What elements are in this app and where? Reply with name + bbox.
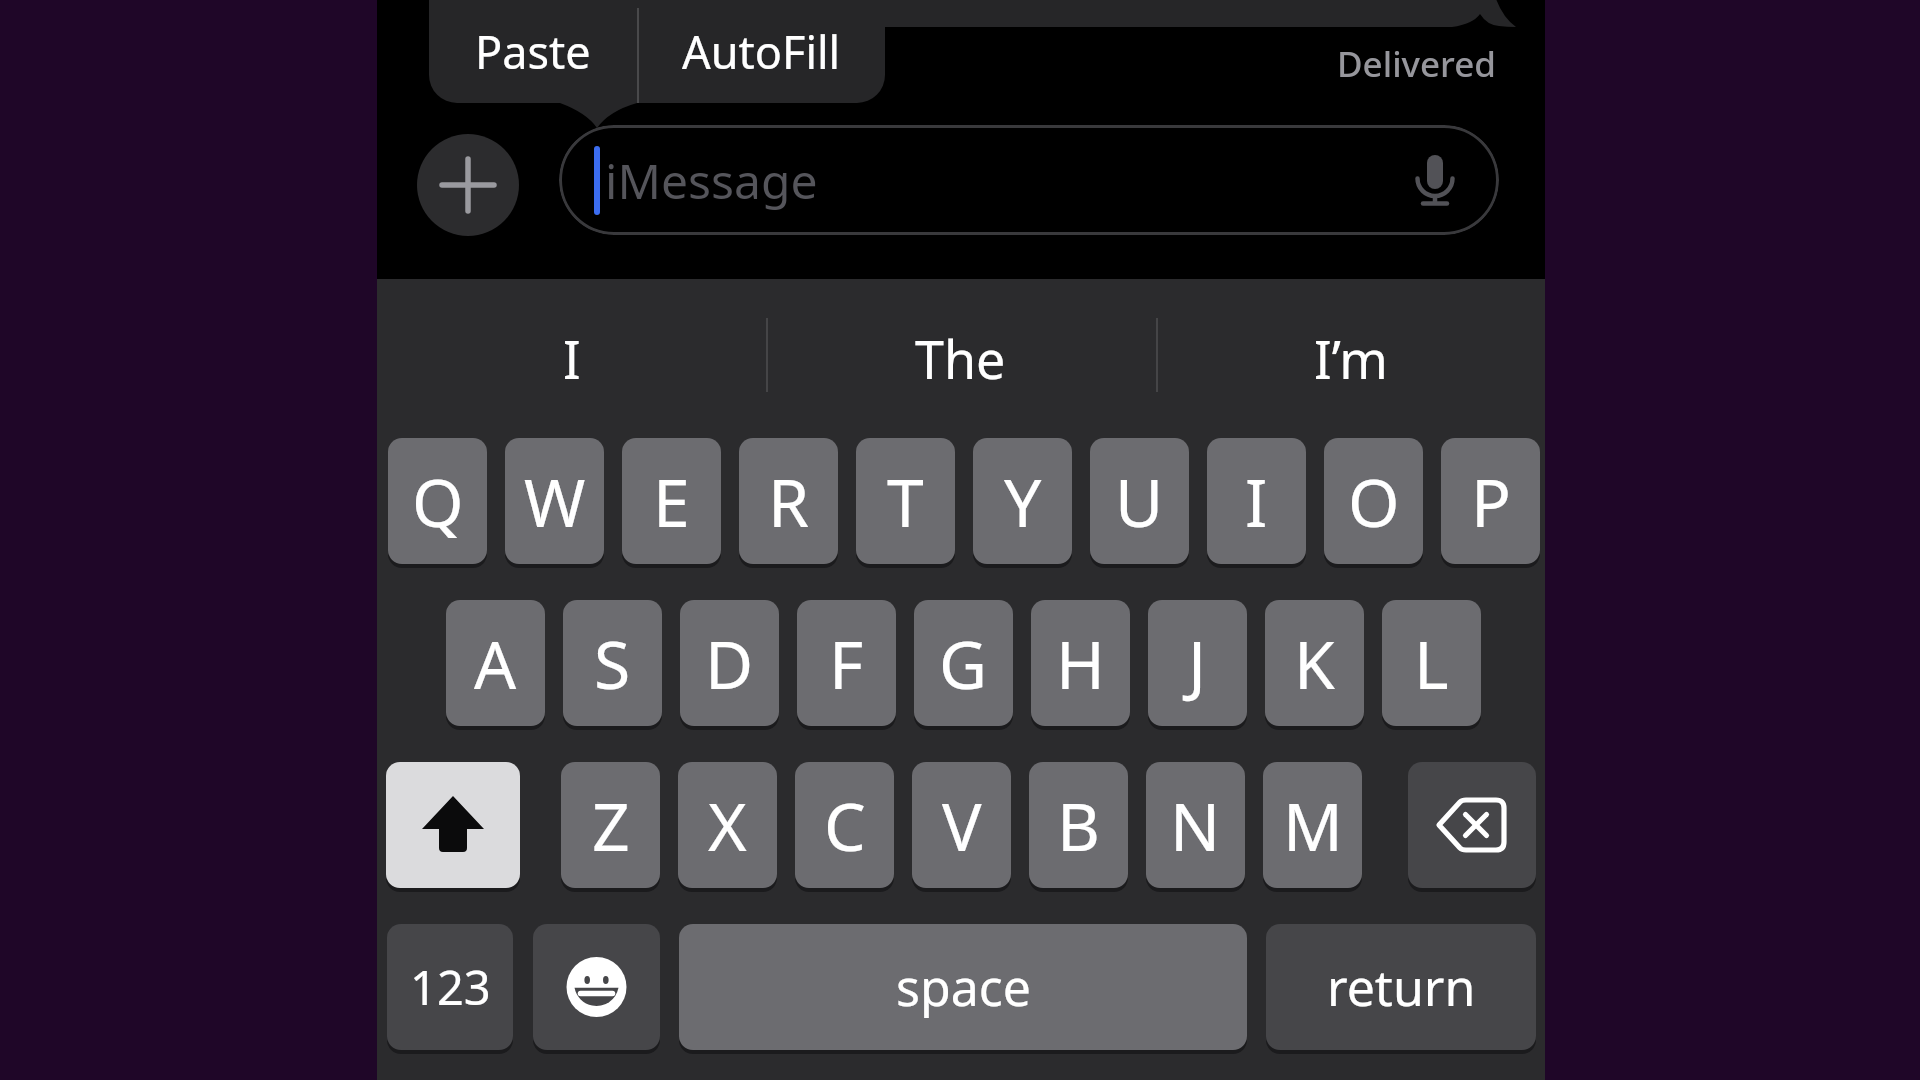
staticText: R [768, 456, 810, 546]
button[interactable]: A [446, 600, 545, 726]
staticText: return [1327, 953, 1476, 1021]
button[interactable]: Z [561, 762, 660, 888]
staticText: U [1115, 456, 1164, 546]
button[interactable] [1408, 762, 1536, 888]
staticText: The [915, 323, 1006, 394]
staticText: C [824, 780, 866, 870]
staticText: D [705, 618, 754, 708]
staticText: Delivered [1337, 40, 1497, 86]
button[interactable]: G [914, 600, 1013, 726]
staticText: B [1057, 780, 1100, 870]
button[interactable]: Y [973, 438, 1072, 564]
button[interactable]: U [1090, 438, 1189, 564]
button[interactable]: D [680, 600, 779, 726]
button[interactable]: X [678, 762, 777, 888]
button[interactable]: H [1031, 600, 1130, 726]
button[interactable]: I [377, 279, 766, 438]
button[interactable]: V [912, 762, 1011, 888]
staticText: iMessage [605, 148, 818, 213]
button[interactable]: S [563, 600, 662, 726]
staticText: J [1188, 618, 1207, 708]
staticText: Paste [475, 21, 591, 82]
staticText: V [942, 780, 982, 870]
button[interactable]: P [1441, 438, 1540, 564]
staticText: I [1245, 456, 1268, 546]
button[interactable]: return [1266, 924, 1536, 1050]
staticText: 123 [410, 955, 491, 1019]
button[interactable]: space [679, 924, 1247, 1050]
staticText: Y [1004, 456, 1042, 546]
button[interactable]: O [1324, 438, 1423, 564]
staticText: W [524, 456, 586, 546]
button[interactable]: N [1146, 762, 1245, 888]
button[interactable]: B [1029, 762, 1128, 888]
staticText: G [939, 618, 988, 708]
button[interactable]: K [1265, 600, 1364, 726]
button[interactable] [417, 134, 519, 236]
staticText: Z [592, 780, 630, 870]
button[interactable]: I [1207, 438, 1306, 564]
staticText: space [896, 953, 1031, 1021]
button[interactable] [386, 762, 520, 888]
staticText: P [1471, 456, 1511, 546]
button[interactable]: W [505, 438, 604, 564]
button[interactable] [533, 924, 660, 1050]
button[interactable]: Q [388, 438, 487, 564]
staticText: A [474, 618, 517, 708]
button[interactable]: C [795, 762, 894, 888]
button[interactable]: I’m [1156, 279, 1545, 438]
staticText: M [1283, 780, 1343, 870]
staticText: L [1414, 618, 1449, 708]
staticText: H [1056, 618, 1105, 708]
button[interactable]: T [856, 438, 955, 564]
staticText: I [563, 323, 581, 394]
button[interactable]: F [797, 600, 896, 726]
button[interactable]: J [1148, 600, 1247, 726]
button[interactable]: R [739, 438, 838, 564]
button[interactable]: AutoFill [637, 0, 885, 103]
staticText: Q [412, 456, 464, 546]
staticText: K [1294, 618, 1335, 708]
staticText: S [594, 618, 631, 708]
staticText: F [829, 618, 864, 708]
staticText: I’m [1314, 323, 1388, 394]
button[interactable]: M [1263, 762, 1362, 888]
staticText: O [1348, 456, 1400, 546]
button[interactable]: L [1382, 600, 1481, 726]
staticText: X [708, 780, 747, 870]
staticText: AutoFill [682, 21, 841, 82]
staticText: N [1170, 780, 1221, 870]
button[interactable]: Paste [429, 0, 637, 103]
button[interactable]: E [622, 438, 721, 564]
button[interactable]: 123 [387, 924, 513, 1050]
button[interactable]: iMessage [559, 125, 1499, 235]
button[interactable]: The [766, 279, 1155, 438]
staticText: E [653, 456, 690, 546]
staticText: T [887, 456, 924, 546]
